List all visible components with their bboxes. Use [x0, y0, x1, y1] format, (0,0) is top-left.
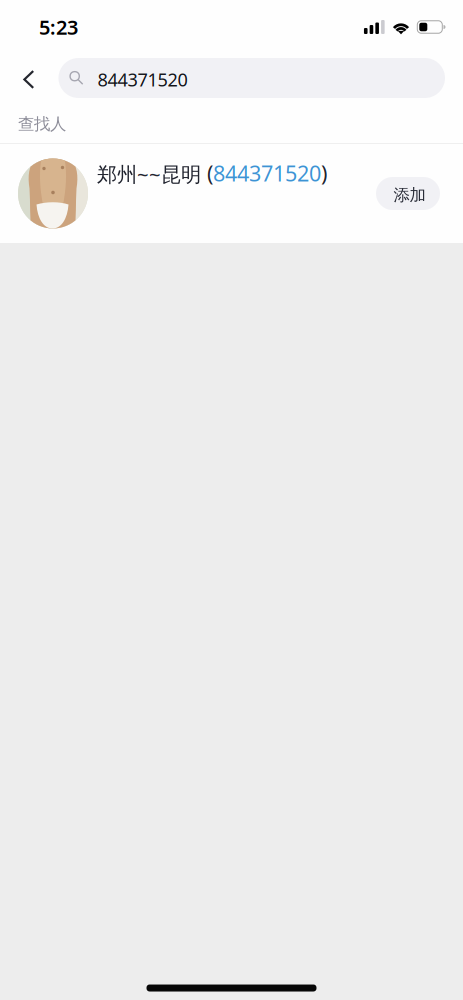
- staticText: 844371520: [213, 158, 321, 188]
- staticText: 郑州~~昆明: [97, 160, 207, 188]
- staticText: 添加: [393, 185, 425, 205]
- staticText: 查找人: [18, 114, 66, 134]
- staticText: 5:23: [39, 14, 78, 40]
- button[interactable]: 844371520: [58, 58, 445, 98]
- button[interactable]: 郑州~~昆明: [0, 144, 463, 243]
- button[interactable]: Back: [0, 54, 58, 102]
- staticText: (: [207, 158, 213, 188]
- staticText: 844371520: [97, 67, 187, 92]
- staticText: ): [321, 158, 327, 188]
- button[interactable]: 添加: [376, 177, 440, 210]
